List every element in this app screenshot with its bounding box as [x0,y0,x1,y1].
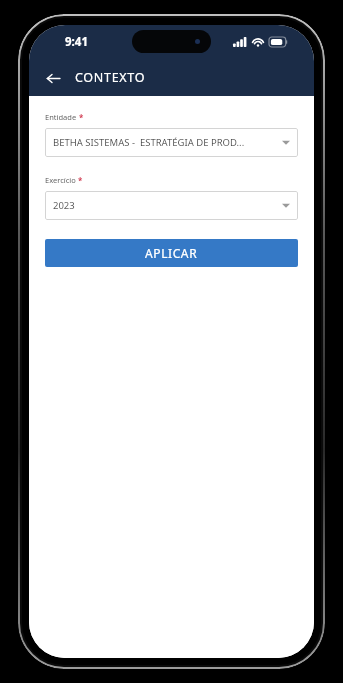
staticText: Exercício [45,175,76,185]
staticText: BETHA SISTEMAS - ESTRATÉGIA DE PROD... [53,136,278,149]
staticText: * [79,112,84,123]
button[interactable]: 2023 [45,191,298,220]
button[interactable]: APLICAR [45,239,298,267]
button[interactable]: BETHA SISTEMAS - ESTRATÉGIA DE PROD... [45,128,298,157]
button[interactable]: Voltar [38,63,68,93]
staticText: 2023 [53,199,278,212]
staticText: CONTEXTO [75,69,146,86]
staticText: * [78,175,83,186]
staticText: APLICAR [145,245,198,261]
staticText: Entidade [45,112,77,122]
staticText: 9:41 [65,34,88,50]
